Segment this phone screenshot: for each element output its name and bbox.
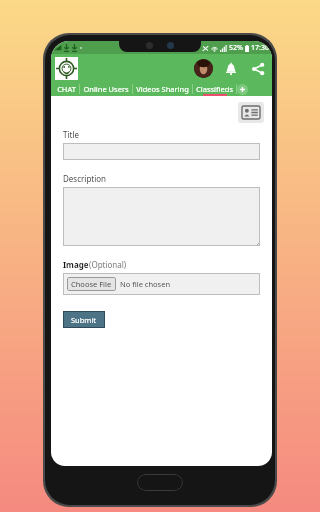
button[interactable]: Classifieds: [193, 82, 236, 96]
button[interactable]: Profile: [194, 59, 213, 78]
staticText: CHAT: [57, 84, 76, 94]
button[interactable]: Videos Sharing: [133, 82, 192, 96]
button[interactable]: Submit: [63, 311, 105, 328]
staticText: Online Users: [83, 84, 129, 94]
staticText: Description: [63, 173, 107, 184]
staticText: Submit: [71, 315, 97, 325]
button[interactable]: Share: [249, 60, 267, 78]
button[interactable]: CHAT: [54, 82, 79, 96]
staticText: 17:30: [251, 43, 269, 53]
staticText: Classifieds: [196, 84, 233, 94]
staticText: Videos Sharing: [136, 84, 189, 94]
staticText: Title: [63, 129, 79, 140]
staticText: 52%: [229, 43, 243, 53]
button[interactable]: [63, 143, 260, 160]
staticText: (Optional): [89, 259, 127, 270]
staticText: No file chosen: [120, 279, 171, 289]
button[interactable]: Choose File: [63, 273, 260, 295]
button[interactable]: Online Users: [80, 82, 132, 96]
button[interactable]: App logo: [55, 57, 78, 80]
button[interactable]: [63, 187, 260, 246]
button[interactable]: Notifications: [222, 60, 240, 78]
staticText: Choose File: [71, 279, 112, 289]
button[interactable]: My listings: [238, 102, 264, 123]
button[interactable]: Add: [237, 84, 248, 95]
staticText: Image: [63, 259, 89, 270]
